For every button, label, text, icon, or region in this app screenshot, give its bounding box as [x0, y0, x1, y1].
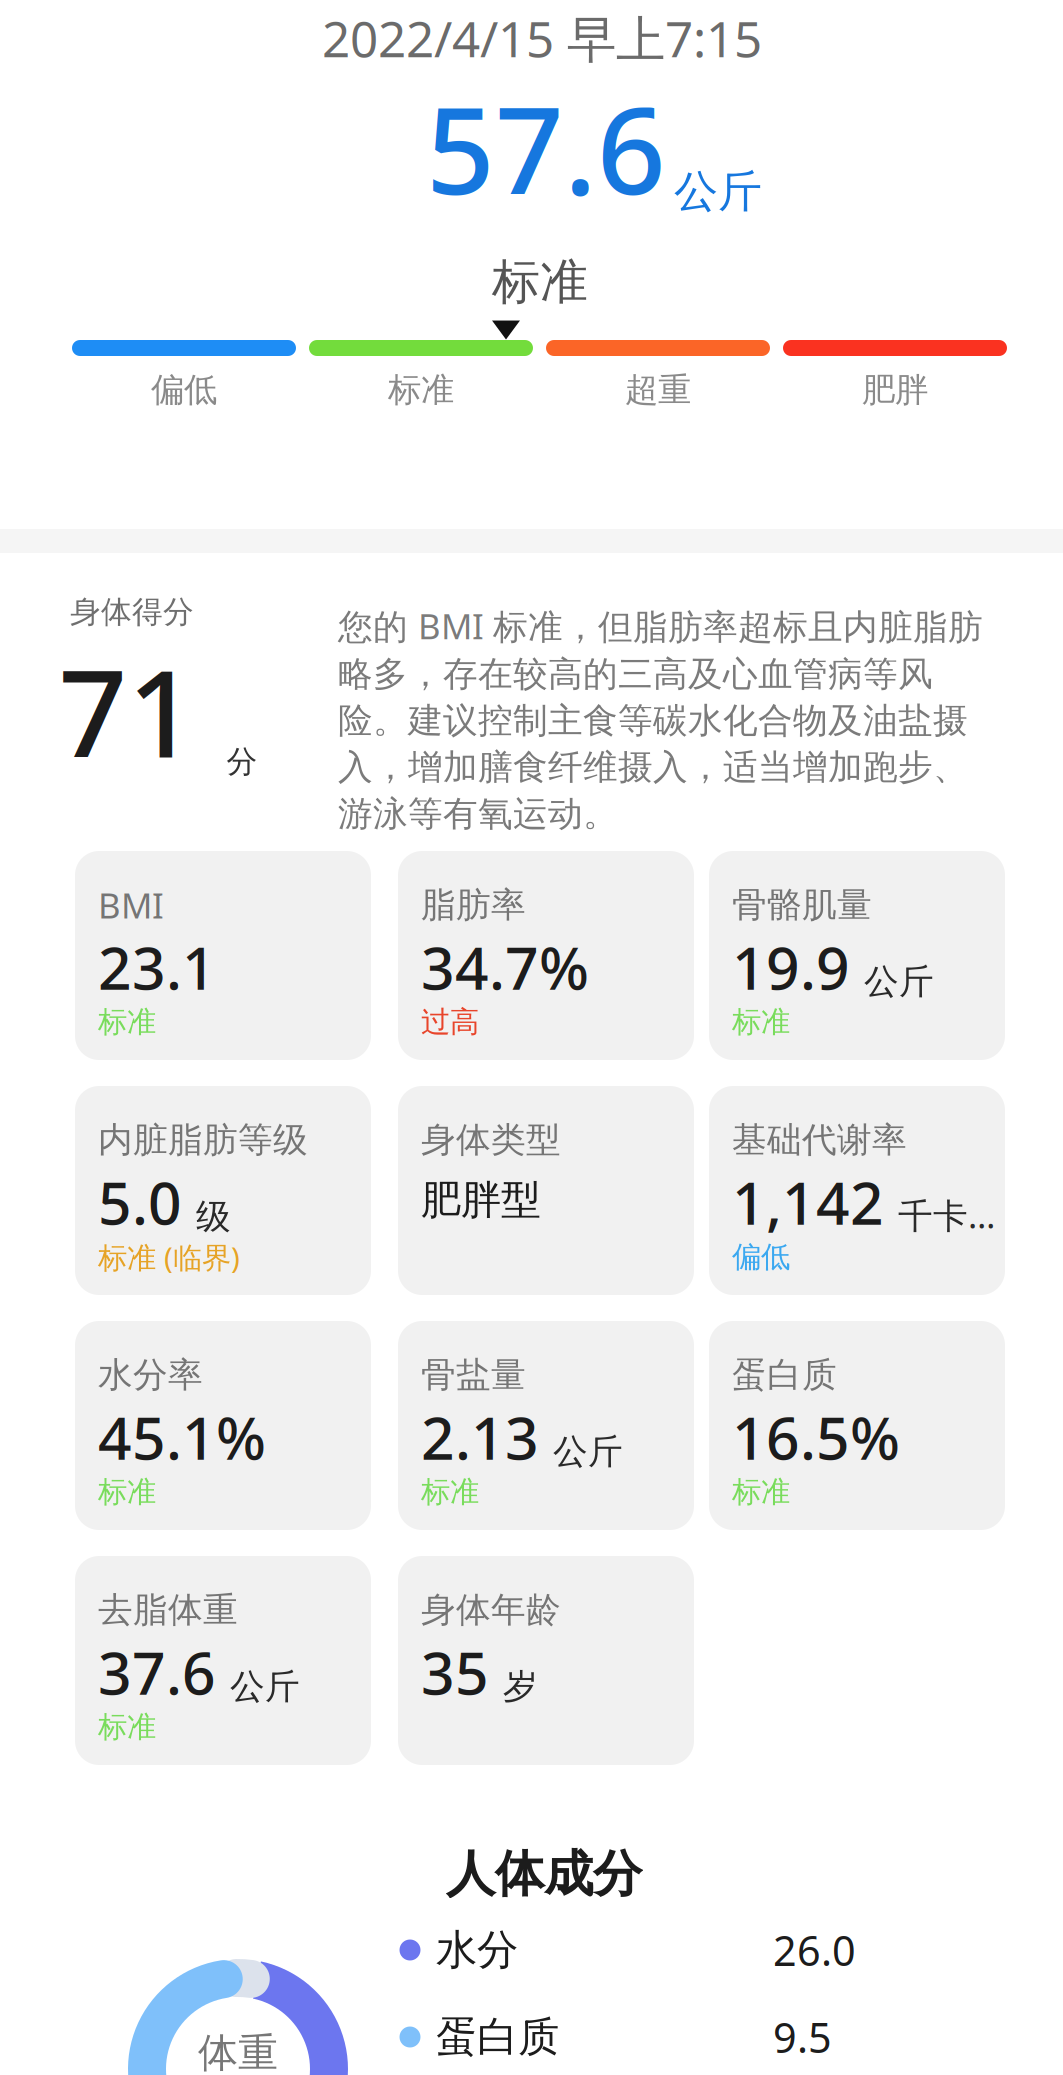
button[interactable]: 身体类型 [398, 1086, 694, 1295]
button[interactable]: 水分率 [75, 1321, 371, 1530]
staticText: 9.5 [773, 2010, 832, 2064]
staticText: 37.6 [98, 1633, 216, 1711]
staticText: 16.5% [732, 1398, 900, 1476]
button[interactable]: 水分 [384, 1907, 1014, 1993]
staticText: 公斤 [674, 165, 762, 219]
staticText: 肥胖 [862, 369, 928, 410]
staticText: 身体类型 [421, 1119, 561, 1161]
button[interactable]: 身体年龄 [398, 1556, 694, 1765]
staticText: 千卡… [898, 1192, 995, 1238]
staticText: 标准 (临界) [98, 1237, 240, 1276]
staticText: 1,142 [732, 1163, 884, 1241]
staticText: 肥胖型 [421, 1175, 541, 1224]
staticText: 体重 [198, 2028, 278, 2075]
button[interactable]: 去脂体重 [75, 1556, 371, 1765]
staticText: 标准 [98, 1004, 156, 1040]
staticText: 2022/4/15 早上7:15 [322, 5, 762, 71]
staticText: 骨骼肌量 [732, 884, 872, 926]
staticText: 基础代谢率 [732, 1119, 907, 1161]
staticText: 57.6 [426, 68, 666, 228]
staticText: 身体年龄 [421, 1589, 561, 1631]
staticText: 过高 [421, 1004, 479, 1040]
staticText: 您的 BMI 标准，但脂肪率超标且内脏脂肪 略多，存在较高的三高及心血管病等风 … [338, 603, 983, 835]
staticText: 级 [196, 1195, 231, 1238]
staticText: 2.13 [421, 1398, 539, 1476]
staticText: 偏低 [732, 1239, 790, 1275]
button[interactable]: 骨骼肌量 [709, 851, 1005, 1060]
staticText: 蛋白质 [436, 2012, 559, 2062]
button[interactable]: 基础代谢率 [709, 1086, 1005, 1295]
staticText: 45.1% [98, 1398, 266, 1476]
staticText: 骨盐量 [421, 1354, 526, 1396]
staticText: 公斤 [553, 1430, 623, 1473]
staticText: 公斤 [230, 1665, 300, 1708]
staticText: 标准 [421, 1474, 479, 1510]
staticText: BMI [98, 882, 164, 928]
staticText: 19.9 [732, 928, 850, 1006]
staticText: 蛋白质 [732, 1354, 837, 1396]
staticText: 岁 [503, 1665, 538, 1708]
staticText: 公斤 [864, 960, 934, 1003]
staticText: 标准 [732, 1474, 790, 1510]
staticText: 26.0 [773, 1923, 856, 1977]
staticText: 34.7% [421, 928, 589, 1006]
button[interactable]: 蛋白质 [709, 1321, 1005, 1530]
staticText: 标准 [492, 252, 588, 311]
staticText: 人体成分 [446, 1844, 642, 1904]
staticText: 水分率 [98, 1354, 203, 1396]
staticText: 标准 [98, 1474, 156, 1510]
staticText: 标准 [388, 369, 454, 410]
staticText: 身体得分 [70, 593, 194, 631]
button[interactable]: BMI [75, 851, 371, 1060]
staticText: 内脏脂肪等级 [98, 1119, 308, 1161]
staticText: 偏低 [151, 369, 217, 410]
staticText: 超重 [625, 369, 691, 410]
button[interactable]: 内脏脂肪等级 [75, 1086, 371, 1295]
button[interactable]: 脂肪率 [398, 851, 694, 1060]
staticText: 23.1 [98, 928, 216, 1006]
button[interactable]: 骨盐量 [398, 1321, 694, 1530]
staticText: 5.0 [98, 1163, 182, 1241]
staticText: 标准 [98, 1709, 156, 1745]
staticText: 标准 [732, 1004, 790, 1040]
button[interactable]: 蛋白质 [384, 1994, 1014, 2075]
staticText: 脂肪率 [421, 884, 526, 926]
staticText: 35 [421, 1633, 489, 1711]
staticText: 水分 [436, 1925, 518, 1975]
staticText: 去脂体重 [98, 1589, 238, 1631]
staticText: 分 [226, 743, 257, 781]
staticText: 71 [58, 631, 196, 791]
